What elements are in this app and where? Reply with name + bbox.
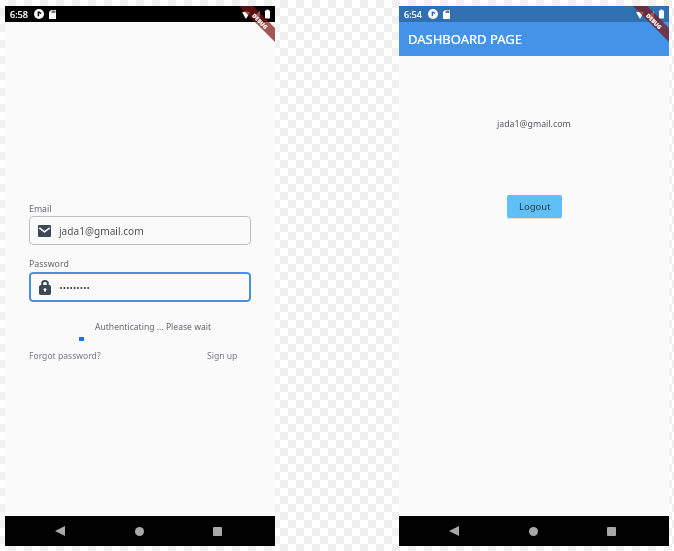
staticText: Email — [29, 203, 52, 215]
staticText: jada1@gmail.com — [497, 118, 571, 130]
staticText: DEBUG — [251, 12, 270, 31]
button[interactable]: Sign up — [207, 350, 238, 362]
staticText: 6:54 — [404, 8, 422, 20]
button[interactable]: Back — [439, 516, 469, 546]
button[interactable] — [29, 272, 251, 302]
button[interactable]: jada1@gmail.com — [29, 216, 251, 245]
button[interactable]: Logout — [507, 195, 562, 218]
button[interactable]: Forgot password? — [29, 350, 101, 362]
staticText: DASHBOARD PAGE — [408, 30, 522, 48]
button[interactable]: Recents — [596, 516, 626, 546]
staticText: Authenticating ... Please wait — [42, 321, 264, 333]
button[interactable]: Recents — [202, 516, 232, 546]
staticText: Forgot password? — [29, 350, 101, 362]
staticText: Password — [29, 258, 69, 270]
staticText: DEBUG — [645, 12, 664, 31]
staticText: 6:58 — [10, 8, 28, 20]
staticText: Logout — [519, 200, 551, 213]
button[interactable]: Back — [45, 516, 75, 546]
button[interactable]: Home — [124, 516, 154, 546]
staticText: jada1@gmail.com — [59, 224, 144, 238]
button[interactable]: Home — [518, 516, 548, 546]
staticText: Sign up — [207, 350, 238, 362]
